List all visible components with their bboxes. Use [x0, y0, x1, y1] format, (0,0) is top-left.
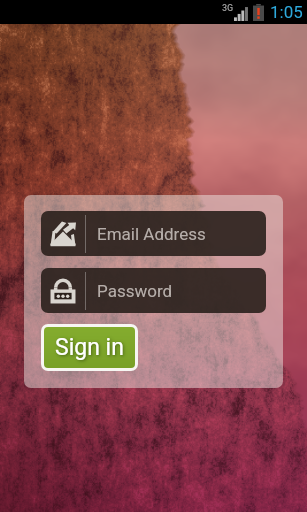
staticText: 3G	[222, 3, 234, 14]
staticText: Sign in	[55, 334, 124, 361]
staticText: 1:05	[270, 2, 303, 22]
button[interactable]: Email Address	[41, 211, 266, 256]
button[interactable]: Sign in	[44, 327, 135, 368]
button[interactable]: Password	[41, 268, 266, 313]
staticText: Password	[97, 281, 173, 301]
staticText: Email Address	[97, 224, 206, 244]
